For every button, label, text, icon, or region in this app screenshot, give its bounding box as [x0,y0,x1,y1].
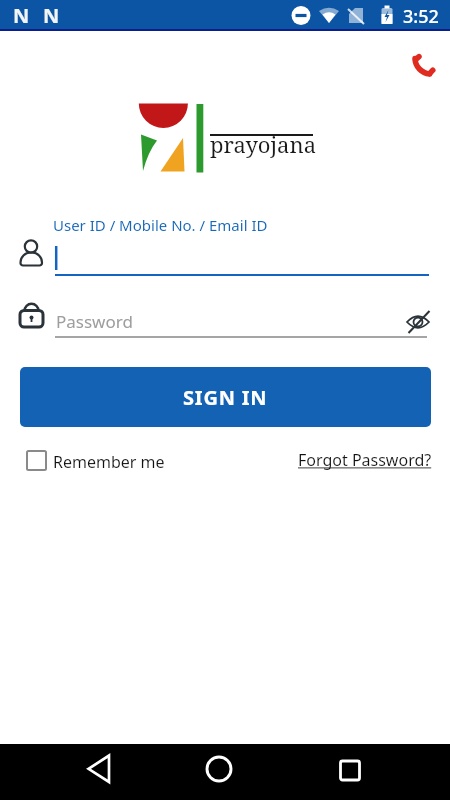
staticText: SIGN IN [183,384,268,411]
staticText: Password [56,310,133,333]
staticText: N [43,2,60,29]
button[interactable]: Remember me [26,450,186,472]
button[interactable] [195,746,243,798]
button[interactable] [15,238,435,278]
button[interactable] [326,746,374,798]
staticText: Forgot Password? [298,449,432,471]
button[interactable] [407,52,437,82]
staticText: prayojana [210,129,317,159]
staticText: User ID / Mobile No. / Email ID [53,215,268,235]
button[interactable] [400,305,438,339]
button[interactable]: Forgot Password? [296,448,436,472]
staticText: N [13,2,30,29]
staticText: 3:52 [403,4,439,29]
staticText: Remember me [53,451,165,473]
button[interactable]: SIGN IN [20,367,431,427]
button[interactable] [15,300,355,340]
button[interactable] [75,746,123,798]
